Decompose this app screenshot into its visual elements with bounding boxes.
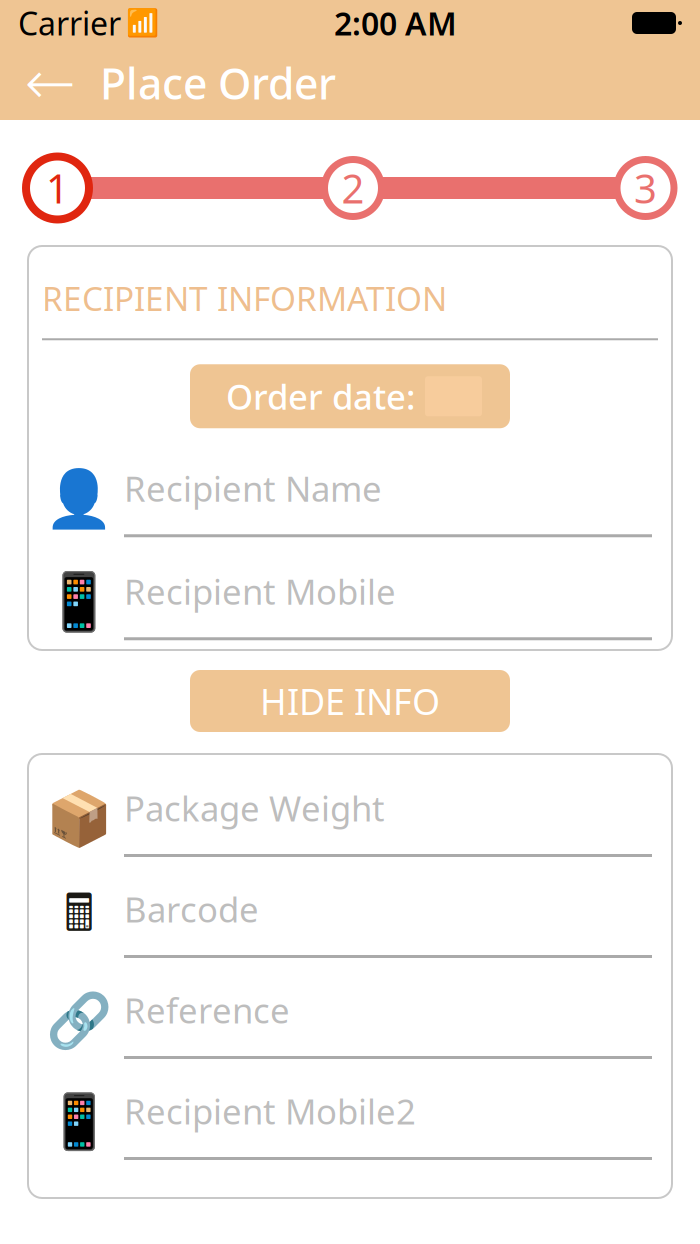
staticText: Recipient Name: [124, 465, 382, 511]
staticText: RECIPIENT INFORMATION: [42, 276, 447, 320]
button[interactable]: Order date:: [190, 364, 510, 428]
staticText: 3: [634, 161, 657, 214]
staticText: 1: [46, 161, 69, 214]
staticText: Order date:: [226, 373, 415, 419]
staticText: Barcode: [124, 886, 259, 932]
staticText: 📦: [46, 788, 112, 849]
staticText: 2: [341, 161, 364, 214]
staticText: Package Weight: [124, 785, 385, 831]
staticText: Recipient Mobile2: [124, 1088, 416, 1134]
staticText: Recipient Mobile: [124, 568, 396, 614]
button[interactable]: HIDE INFO: [190, 670, 510, 732]
button[interactable]: Back: [14, 46, 86, 120]
staticText: 🖩: [64, 877, 94, 961]
staticText: Place Order: [100, 55, 336, 111]
staticText: 🔗: [46, 990, 112, 1051]
staticText: 📱: [44, 570, 114, 634]
staticText: 2:00 AM: [334, 2, 457, 44]
staticText: Carrier: [18, 2, 121, 44]
staticText: 📱: [46, 1091, 112, 1152]
staticText: HIDE INFO: [260, 677, 440, 725]
staticText: Reference: [124, 987, 290, 1033]
staticText: ←: [24, 48, 75, 118]
staticText: 📶: [126, 8, 159, 38]
staticText: 👤: [44, 467, 114, 531]
